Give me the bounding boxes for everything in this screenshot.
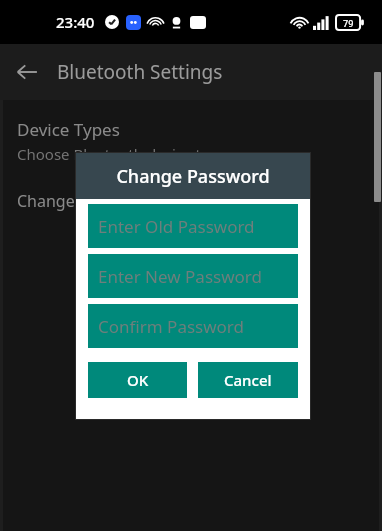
- button[interactable]: Device Types: [17, 118, 120, 141]
- staticText: OK: [127, 370, 149, 390]
- staticText: Choose Bluetooth device types: [17, 144, 234, 164]
- staticText: Enter Old Password: [98, 215, 255, 238]
- staticText: Confirm Password: [98, 315, 244, 338]
- staticText: Change Password: [116, 164, 270, 189]
- staticText: 23:40: [56, 12, 95, 32]
- button[interactable]: Enter New Password: [88, 254, 298, 298]
- staticText: 79: [343, 17, 354, 29]
- button[interactable]: Change Password: [17, 190, 152, 212]
- button[interactable]: Cancel: [198, 362, 298, 398]
- button[interactable]: Back: [3, 48, 51, 96]
- staticText: Cancel: [224, 370, 272, 390]
- button[interactable]: OK: [88, 362, 187, 398]
- staticText: Enter New Password: [98, 265, 262, 288]
- button[interactable]: Confirm Password: [88, 304, 298, 348]
- button[interactable]: Enter Old Password: [88, 204, 298, 248]
- staticText: Bluetooth Settings: [57, 59, 223, 85]
